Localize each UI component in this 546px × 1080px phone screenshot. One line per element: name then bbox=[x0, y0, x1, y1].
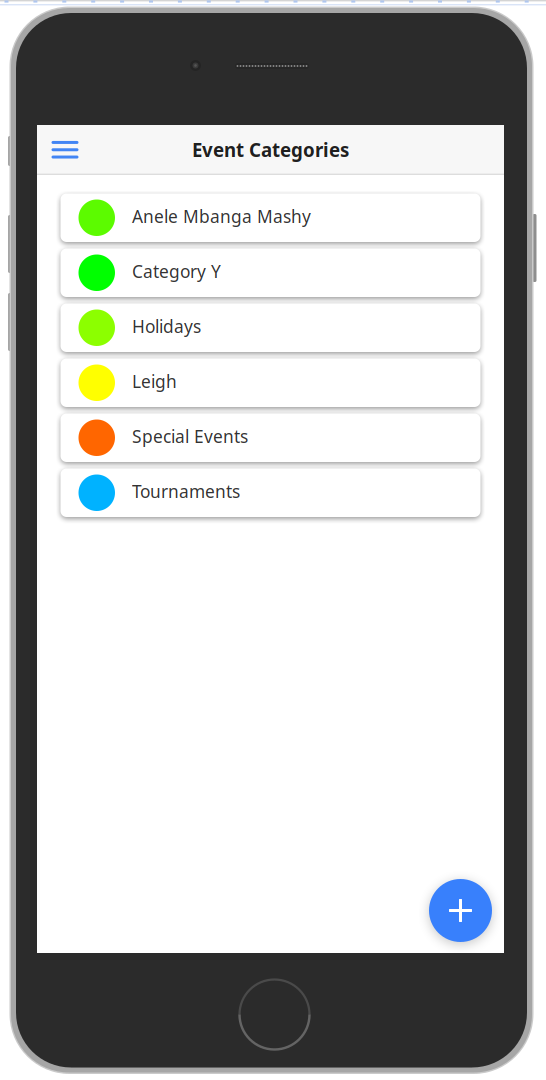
staticText: Anele Mbanga Mashy bbox=[132, 205, 311, 228]
staticText: Leigh bbox=[132, 370, 177, 393]
button[interactable]: Category Y bbox=[60, 248, 480, 297]
staticText: Category Y bbox=[132, 260, 221, 283]
staticText: Tournaments bbox=[132, 480, 240, 503]
button[interactable]: Special Events bbox=[60, 413, 480, 462]
button[interactable]: Menu bbox=[37, 125, 93, 174]
staticText: Event Categories bbox=[192, 137, 349, 162]
button[interactable]: Anele Mbanga Mashy bbox=[60, 193, 480, 242]
button[interactable]: Leigh bbox=[60, 358, 480, 407]
button[interactable]: Add category bbox=[429, 879, 492, 942]
staticText: Special Events bbox=[132, 425, 248, 448]
button[interactable]: Holidays bbox=[60, 303, 480, 352]
staticText: Holidays bbox=[132, 315, 201, 338]
button[interactable]: Tournaments bbox=[60, 468, 480, 517]
